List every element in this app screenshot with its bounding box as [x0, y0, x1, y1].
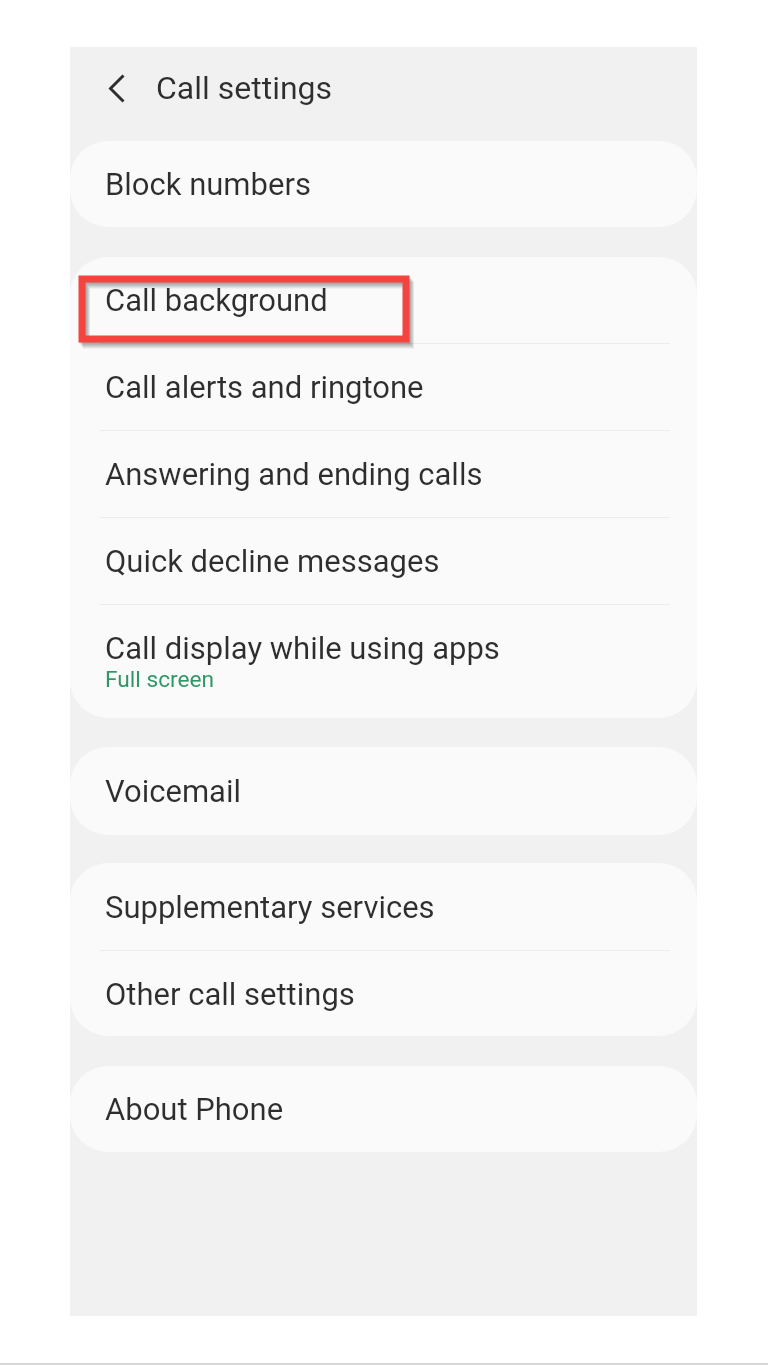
staticText: Full screen	[105, 666, 215, 693]
button[interactable]: Block numbers	[70, 141, 697, 227]
staticText: Call settings	[156, 69, 333, 107]
staticText: Voicemail	[105, 773, 242, 809]
staticText: Block numbers	[105, 166, 311, 202]
button[interactable]: Other call settings	[70, 951, 697, 1036]
staticText: Other call settings	[105, 976, 355, 1012]
staticText: Supplementary services	[105, 889, 435, 925]
staticText: Call alerts and ringtone	[105, 369, 424, 405]
staticText: Call background	[105, 282, 328, 318]
button[interactable]: Navigate up	[92, 63, 142, 113]
button[interactable]: Call background	[70, 257, 697, 343]
staticText: Call display while using apps	[105, 630, 500, 666]
button[interactable]: Answering and ending calls	[70, 431, 697, 517]
button[interactable]: About Phone	[70, 1066, 697, 1152]
button[interactable]: Voicemail	[70, 747, 697, 835]
staticText: Quick decline messages	[105, 543, 440, 579]
staticText: About Phone	[105, 1091, 284, 1127]
button[interactable]: Call display while using apps	[70, 605, 697, 718]
staticText: Answering and ending calls	[105, 456, 483, 492]
button[interactable]: Call alerts and ringtone	[70, 344, 697, 430]
button[interactable]: Quick decline messages	[70, 518, 697, 604]
button[interactable]: Supplementary services	[70, 863, 697, 950]
